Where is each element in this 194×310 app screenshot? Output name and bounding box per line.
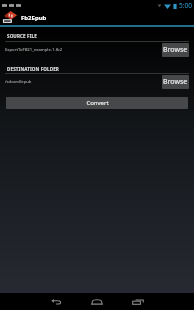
staticText: Fb2Epub [21, 14, 47, 22]
staticText: ExportToFB21_example-1.fb2 [5, 47, 162, 53]
button[interactable]: Back [35, 293, 77, 310]
staticText: 5:00 [179, 1, 192, 10]
staticText: Convert [86, 99, 109, 107]
staticText: /sdcard/epub [5, 79, 162, 85]
button[interactable]: Recent apps [117, 293, 159, 310]
button[interactable]: Home [76, 293, 118, 310]
staticText: DESTINATION FOLDER [7, 66, 59, 72]
button[interactable]: Browse [162, 75, 189, 89]
staticText: Browse [163, 45, 188, 55]
button[interactable]: Convert [6, 97, 188, 109]
button[interactable]: Browse [162, 43, 189, 57]
staticText: SOURCE FILE [7, 33, 37, 39]
staticText: Browse [163, 77, 188, 87]
